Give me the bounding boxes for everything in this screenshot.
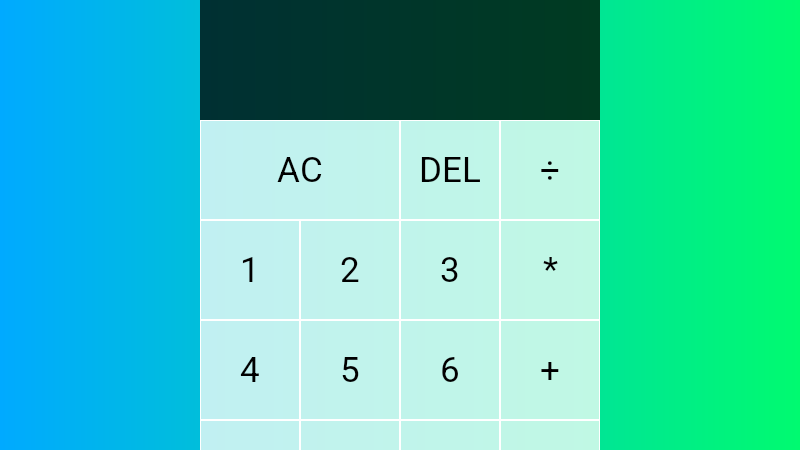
staticText: 3 — [440, 250, 460, 291]
button[interactable]: 3 — [401, 221, 499, 319]
staticText: 4 — [240, 350, 260, 391]
staticText: AC — [277, 150, 323, 191]
staticText: DEL — [419, 150, 481, 191]
staticText: * — [543, 250, 558, 291]
button[interactable]: AC — [201, 121, 399, 219]
staticText: + — [540, 350, 560, 391]
staticText: 2 — [340, 250, 360, 291]
button[interactable]: * — [501, 221, 599, 319]
button[interactable]: + — [501, 321, 599, 419]
staticText: 1 — [240, 250, 260, 291]
button[interactable]: 2 — [301, 221, 399, 319]
button[interactable]: 6 — [401, 321, 499, 419]
button[interactable]: 1 — [201, 221, 299, 319]
button[interactable]: ÷ — [501, 121, 599, 219]
button[interactable]: DEL — [401, 121, 499, 219]
button[interactable]: 4 — [201, 321, 299, 419]
button[interactable]: 5 — [301, 321, 399, 419]
staticText: 5 — [340, 350, 360, 391]
staticText: ÷ — [540, 150, 560, 191]
staticText: 6 — [440, 350, 460, 391]
